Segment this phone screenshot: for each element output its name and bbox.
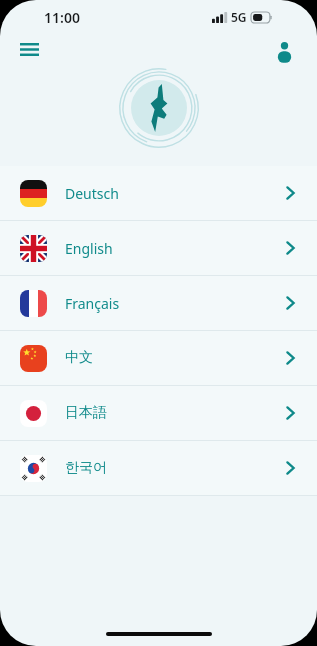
- button[interactable]: 한국어: [0, 441, 317, 495]
- staticText: 5G: [231, 9, 247, 25]
- button[interactable]: 中文: [0, 331, 317, 385]
- staticText: 한국어: [65, 459, 107, 477]
- staticText: 日本語: [65, 404, 107, 422]
- staticText: Deutsch: [65, 184, 119, 203]
- staticText: 11:00: [44, 8, 80, 27]
- button[interactable]: Account: [269, 34, 299, 64]
- button[interactable]: Menu: [14, 34, 44, 64]
- button[interactable]: Deutsch: [0, 166, 317, 220]
- staticText: Français: [65, 294, 120, 313]
- button[interactable]: Français: [0, 276, 317, 330]
- button[interactable]: English: [0, 221, 317, 275]
- staticText: English: [65, 239, 113, 258]
- staticText: 中文: [65, 349, 93, 367]
- button[interactable]: 日本語: [0, 386, 317, 440]
